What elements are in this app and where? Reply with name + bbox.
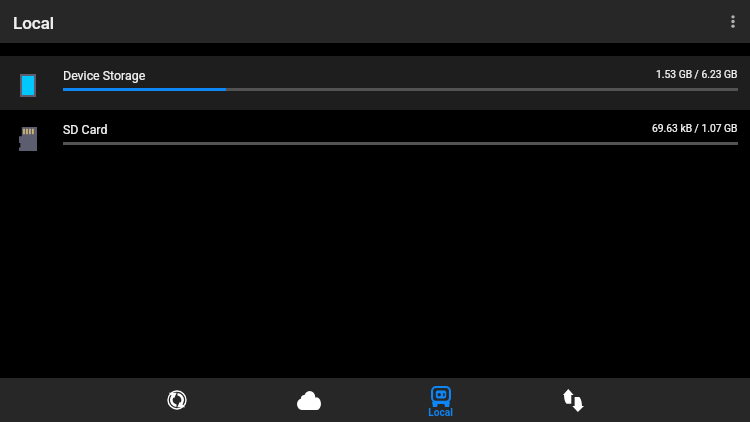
staticText: SD Card — [63, 122, 108, 137]
staticText: Local — [428, 407, 453, 419]
button[interactable]: Cloud — [243, 378, 375, 422]
button[interactable]: Sync — [111, 378, 243, 422]
staticText: 69.63 kB / 1.07 GB — [652, 122, 738, 134]
button[interactable]: Local — [375, 378, 507, 422]
button[interactable]: Transfers — [507, 378, 639, 422]
button[interactable]: More options — [716, 0, 750, 43]
staticText: Device Storage — [63, 68, 146, 83]
button[interactable]: SD Card — [0, 110, 750, 164]
staticText: 1.53 GB / 6.23 GB — [656, 68, 738, 80]
staticText: Local — [13, 13, 55, 33]
button[interactable]: Device Storage — [0, 56, 750, 110]
